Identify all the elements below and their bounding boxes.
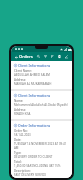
button[interactable]: Search [35,52,42,61]
staticText: Date: [14,138,22,142]
staticText: Client Informations [18,63,51,68]
button[interactable]: Edit [63,52,70,61]
staticText: Client Name: [14,69,32,73]
staticText: ABDULLAH AHMED SALEM [14,73,50,77]
staticText: DELIVERY ORDER TO CLIENT [14,155,53,159]
staticText: Address: [14,108,26,112]
staticText: FAST DELIVERY SERVICE [14,173,47,176]
staticText: Mohammed Abdullah Al-Otaibi (Riyadh) [14,103,68,107]
staticText: Total: [14,160,22,164]
staticText: MAKKAH AL MUKARRAMAH [14,82,52,86]
button[interactable]: Client Informations [11,61,72,89]
button[interactable]: Order Informations [11,121,72,178]
staticText: RIYADH KSA [14,112,31,116]
staticText: Type: [14,151,22,155]
button[interactable]: Filter [42,52,49,61]
button[interactable]: Orders [19,54,33,60]
staticText: 1,450.00 SAR INCLUDING VAT 15% [14,164,61,168]
staticText: 58-142-2023 [14,133,31,137]
staticText: Description: [14,169,31,173]
button[interactable]: Sort [49,52,56,61]
button[interactable]: Print [56,52,63,61]
staticText: TUESDAY 14 NOVEMBER 2023 AT 09:41 AM [14,142,69,150]
button[interactable]: Back [13,53,19,61]
staticText: Client Informations [18,93,51,98]
staticText: Address: [14,78,26,82]
staticText: Order No: [14,129,28,133]
staticText: Name: [14,99,24,103]
button[interactable]: Client Informations [11,91,72,119]
staticText: Order Informations [18,123,51,128]
